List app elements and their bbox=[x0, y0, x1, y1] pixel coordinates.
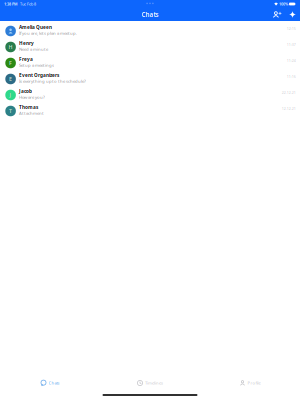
staticText: Need a minute bbox=[19, 46, 48, 52]
button[interactable]: Timelines bbox=[100, 376, 200, 390]
button[interactable]: F bbox=[0, 53, 300, 69]
staticText: 11:16 bbox=[287, 74, 296, 79]
button[interactable]: Add contact bbox=[271, 8, 282, 20]
button[interactable]: J bbox=[0, 85, 300, 101]
staticText: 11:37 bbox=[287, 42, 296, 47]
staticText: H bbox=[9, 43, 13, 51]
staticText: Is everything upto the schedule? bbox=[19, 78, 86, 84]
staticText: Timelines bbox=[145, 380, 163, 386]
staticText: Freya bbox=[19, 56, 33, 62]
button[interactable]: H bbox=[0, 37, 300, 53]
staticText: Amelia Queen bbox=[19, 24, 52, 30]
button[interactable]: Compose bbox=[287, 8, 298, 20]
staticText: Profile bbox=[247, 380, 260, 386]
staticText: Chats bbox=[141, 10, 158, 19]
staticText: Thomas bbox=[19, 104, 38, 110]
button[interactable]: Amelia Queen bbox=[0, 21, 300, 37]
staticText: Attachment bbox=[19, 110, 44, 116]
staticText: E bbox=[9, 75, 12, 83]
button[interactable]: Profile bbox=[200, 376, 300, 390]
staticText: J bbox=[10, 91, 12, 99]
staticText: F bbox=[9, 59, 12, 67]
button[interactable]: Chats bbox=[0, 376, 100, 390]
staticText: 100% bbox=[278, 1, 289, 7]
staticText: Setup a meetings bbox=[19, 62, 54, 68]
staticText: Tue Feb 8 bbox=[17, 1, 36, 7]
staticText: 11:24 bbox=[287, 58, 296, 63]
button[interactable]: T bbox=[0, 101, 300, 117]
staticText: Event Organizers bbox=[19, 72, 59, 78]
staticText: How are you? bbox=[19, 94, 45, 100]
staticText: T bbox=[9, 107, 12, 115]
staticText: Chats bbox=[49, 380, 60, 386]
staticText: Jacob bbox=[19, 88, 32, 94]
staticText: Henry bbox=[19, 40, 34, 46]
staticText: 12.12.21 bbox=[282, 106, 296, 111]
staticText: 22.12.21 bbox=[282, 90, 296, 95]
button[interactable]: E bbox=[0, 69, 300, 85]
staticText: If you are, lets plan a meetup. bbox=[19, 30, 77, 36]
staticText: 1:38 PM bbox=[4, 1, 17, 7]
staticText: 12:15 bbox=[287, 26, 296, 31]
